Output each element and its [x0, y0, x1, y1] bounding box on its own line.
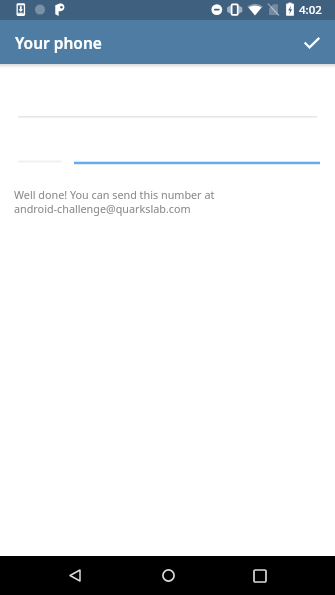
button[interactable]: Back [55, 556, 95, 595]
staticText: Your phone [15, 32, 102, 53]
button[interactable]: Home [148, 556, 188, 595]
staticText: Well done! You can send this number at a… [14, 187, 215, 216]
button[interactable]: Phone number [18, 129, 320, 163]
button[interactable]: Done [290, 20, 334, 64]
button[interactable]: Country code [18, 84, 317, 118]
button[interactable]: Recent apps [240, 556, 280, 595]
staticText: 4:02 [299, 2, 322, 18]
